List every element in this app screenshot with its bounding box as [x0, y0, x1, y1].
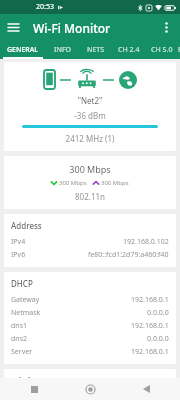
staticText: "Net2" [4, 95, 176, 106]
button[interactable]: F [178, 41, 180, 59]
staticText: Netmask [11, 308, 41, 318]
staticText: 0.0.0.0 [147, 334, 169, 344]
button[interactable]: IPv6 [4, 250, 176, 260]
button[interactable]: Gateway [4, 295, 176, 305]
button[interactable]: dns1 [4, 321, 176, 331]
staticText: 2412 MHz (1) [4, 133, 176, 144]
staticText: 300 Mbps [59, 179, 87, 187]
button[interactable]: Server [4, 347, 176, 357]
staticText: 192.168.0.1 [131, 321, 169, 331]
button[interactable]: CH 5.0 [145, 41, 178, 59]
button[interactable]: GENERAL [0, 41, 46, 59]
staticText: GENERAL [7, 45, 39, 55]
button[interactable]: More options [153, 14, 180, 41]
staticText: 802.11n [4, 191, 176, 202]
staticText: dns1 [11, 321, 27, 331]
staticText: Wi-Fi 6 [11, 375, 38, 378]
button[interactable]: Recent apps [23, 378, 45, 400]
staticText: fe80::fcd1:2d79:a460:f40 [88, 250, 169, 260]
button[interactable]: NETS [79, 41, 112, 59]
staticText: 300 Mbps [4, 163, 176, 175]
staticText: CH 2.4 [118, 45, 140, 55]
staticText: Address [11, 220, 42, 231]
staticText: dns2 [11, 334, 27, 344]
staticText: 0.0.0.0 [147, 308, 169, 318]
staticText: CH 5.0 [151, 45, 173, 55]
staticText: 300 Mbps [101, 179, 129, 187]
staticText: IPv4 [11, 237, 26, 247]
button[interactable]: Netmask [4, 308, 176, 318]
staticText: NETS [87, 45, 105, 55]
staticText: 192.168.0.102 [123, 237, 169, 247]
staticText: F [178, 45, 180, 55]
staticText: Wi-Fi Monitor [33, 20, 111, 36]
staticText: 192.168.0.1 [131, 347, 169, 357]
button[interactable]: INFO [46, 41, 79, 59]
staticText: IPv6 [11, 250, 26, 260]
staticText: Server [11, 347, 33, 357]
button[interactable]: Back [135, 378, 157, 400]
staticText: -36 dBm [4, 110, 176, 121]
staticText: Gateway [11, 295, 40, 305]
button[interactable]: IPv4 [4, 237, 176, 247]
staticText: DHCP [11, 278, 33, 289]
button[interactable]: Open navigation menu [0, 14, 27, 41]
button[interactable]: CH 2.4 [112, 41, 145, 59]
staticText: 192.168.0.1 [131, 295, 169, 305]
button[interactable]: dns2 [4, 334, 176, 344]
staticText: 20:53 [36, 2, 54, 12]
staticText: INFO [54, 45, 72, 55]
button[interactable]: Home [79, 378, 101, 400]
